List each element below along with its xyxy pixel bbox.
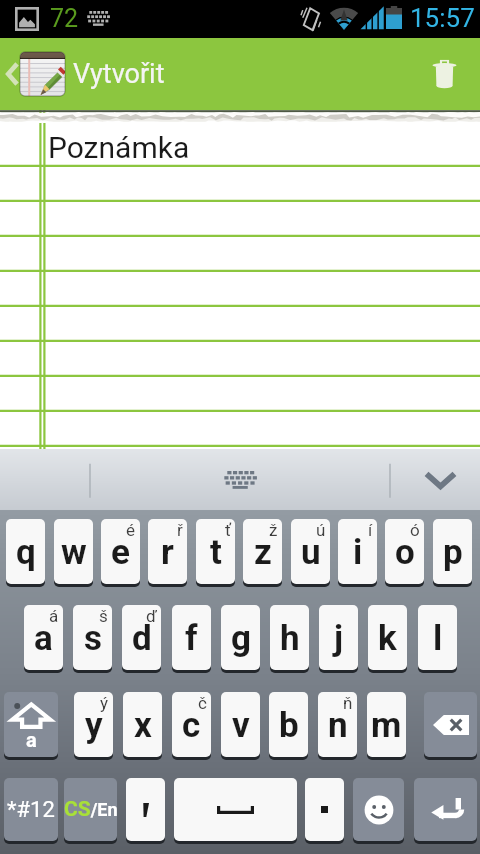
button[interactable]: w xyxy=(54,519,93,584)
staticText: d xyxy=(132,618,152,659)
button[interactable]: Back xyxy=(0,52,24,96)
button[interactable]: Keyboard settings xyxy=(205,459,275,501)
button[interactable]: s xyxy=(73,605,112,670)
staticText: ň xyxy=(343,693,353,713)
staticText: w xyxy=(61,532,87,573)
staticText: z xyxy=(254,532,272,573)
button[interactable]: o xyxy=(385,519,424,584)
staticText: CS/En xyxy=(64,797,117,822)
staticText: 15:57 xyxy=(410,3,475,33)
button[interactable]: z xyxy=(243,519,282,584)
button[interactable]: g xyxy=(221,605,260,670)
staticText: a xyxy=(34,618,53,659)
staticText: a xyxy=(26,728,37,751)
staticText: e xyxy=(111,532,130,573)
button[interactable]: backspace xyxy=(424,692,477,757)
staticText: Vytvořit xyxy=(73,58,165,90)
staticText: ý xyxy=(100,693,109,713)
button[interactable]: q xyxy=(6,519,45,584)
staticText: í xyxy=(368,520,373,540)
button[interactable]: n xyxy=(318,692,357,757)
button[interactable]: v xyxy=(221,692,260,757)
button[interactable]: k xyxy=(368,605,407,670)
staticText: x xyxy=(134,705,152,746)
staticText: q xyxy=(16,532,36,573)
button[interactable]: emoji xyxy=(353,778,404,841)
button[interactable]: a xyxy=(24,605,63,670)
button[interactable]: u xyxy=(291,519,330,584)
staticText: f xyxy=(185,618,198,659)
staticText: h xyxy=(280,618,300,659)
button[interactable]: j xyxy=(319,605,358,670)
staticText: p xyxy=(443,532,463,573)
button[interactable]: c xyxy=(172,692,211,757)
staticText: t xyxy=(210,532,222,573)
button[interactable]: r xyxy=(148,519,187,584)
staticText: m xyxy=(371,705,402,746)
button[interactable]: Delete xyxy=(419,49,469,99)
staticText: ť xyxy=(225,520,231,540)
staticText: š xyxy=(99,606,108,626)
button[interactable]: period xyxy=(305,778,344,841)
staticText: i xyxy=(353,532,363,573)
staticText: l xyxy=(433,618,443,659)
staticText: ó xyxy=(410,520,420,540)
staticText: b xyxy=(279,705,299,746)
button[interactable]: i xyxy=(338,519,377,584)
staticText: č xyxy=(198,693,207,713)
staticText: n xyxy=(328,705,348,746)
button[interactable]: comma xyxy=(126,778,165,841)
staticText: r xyxy=(161,532,174,573)
button[interactable]: b xyxy=(269,692,308,757)
staticText: ž xyxy=(269,520,278,540)
button[interactable]: shift xyxy=(4,692,58,757)
button[interactable]: e xyxy=(101,519,140,584)
staticText: *#12 xyxy=(7,797,55,823)
button[interactable]: Hide keyboard xyxy=(412,452,468,508)
staticText: ř xyxy=(177,520,183,540)
staticText: g xyxy=(231,618,251,659)
staticText: é xyxy=(126,520,136,540)
button[interactable]: f xyxy=(172,605,211,670)
staticText: o xyxy=(395,532,415,573)
staticText: y xyxy=(85,705,103,746)
button[interactable]: t xyxy=(196,519,235,584)
staticText: 72 xyxy=(50,4,79,33)
button[interactable]: y xyxy=(74,692,113,757)
button[interactable]: Vytvořit xyxy=(20,52,165,96)
staticText: j xyxy=(334,618,344,659)
button[interactable]: enter xyxy=(414,778,477,841)
staticText: s xyxy=(84,618,102,659)
staticText: á xyxy=(49,606,59,626)
button[interactable]: l xyxy=(418,605,457,670)
staticText: u xyxy=(301,532,321,573)
button[interactable]: h xyxy=(270,605,309,670)
staticText: ú xyxy=(316,520,326,540)
button[interactable]: d xyxy=(122,605,161,670)
staticText: k xyxy=(378,618,397,659)
button[interactable]: x xyxy=(123,692,162,757)
staticText: v xyxy=(232,705,250,746)
button[interactable]: space xyxy=(174,778,297,841)
staticText: ď xyxy=(146,606,157,626)
button[interactable]: m xyxy=(367,692,406,757)
button[interactable]: *#12 xyxy=(4,778,58,841)
button[interactable]: p xyxy=(433,519,472,584)
staticText: c xyxy=(182,705,201,746)
staticText: Poznámka xyxy=(48,130,190,165)
button[interactable]: lang xyxy=(64,778,117,841)
